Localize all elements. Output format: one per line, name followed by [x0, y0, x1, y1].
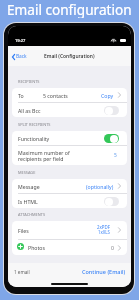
- button[interactable]: Is HTML: [12, 194, 127, 208]
- button[interactable]: Back: [8, 49, 33, 64]
- staticText: Message: [18, 183, 40, 190]
- staticText: 2xPDF 1xXLS: [97, 224, 110, 236]
- staticText: Maximum number of recipients per field: [18, 149, 70, 163]
- button[interactable]: Files: [12, 221, 127, 239]
- button[interactable]: Message: [12, 179, 127, 193]
- staticText: To: [18, 92, 24, 99]
- staticText: 19:27: [15, 38, 26, 43]
- staticText: All as Bcc: [18, 107, 41, 114]
- staticText: Copy: [101, 92, 114, 99]
- staticText: Photos: [28, 244, 45, 251]
- button[interactable]: Maximum number of recipients per field: [12, 146, 127, 165]
- button[interactable]: Off: [104, 106, 119, 115]
- staticText: RECIPIENTS: [18, 79, 40, 84]
- staticText: 5: [114, 152, 117, 159]
- staticText: SPLIT RECIPIENTS: [18, 122, 51, 127]
- staticText: Is HTML: [18, 198, 38, 205]
- staticText: Functionality: [18, 135, 50, 142]
- staticText: ATTACHMENTS: [18, 212, 46, 217]
- staticText: MESSAGE: [18, 170, 36, 175]
- staticText: (optionally): [86, 183, 114, 190]
- staticText: Email configuration: [7, 0, 132, 18]
- button[interactable]: To: [12, 88, 127, 102]
- button[interactable]: Continue (Email): [77, 263, 131, 279]
- staticText: Email (Configuration): [44, 53, 95, 60]
- staticText: 0: [111, 244, 114, 251]
- staticText: Back: [16, 53, 27, 60]
- button[interactable]: All as Bcc: [12, 103, 127, 117]
- staticText: 5 contacts: [43, 92, 68, 99]
- staticText: Files: [18, 227, 29, 234]
- button[interactable]: Functionality: [12, 131, 127, 145]
- staticText: 1 email: [14, 269, 30, 275]
- button[interactable]: Off: [104, 197, 119, 206]
- staticText: Continue (Email): [82, 268, 126, 275]
- button[interactable]: Photos: [12, 240, 127, 255]
- button[interactable]: On: [104, 134, 119, 143]
